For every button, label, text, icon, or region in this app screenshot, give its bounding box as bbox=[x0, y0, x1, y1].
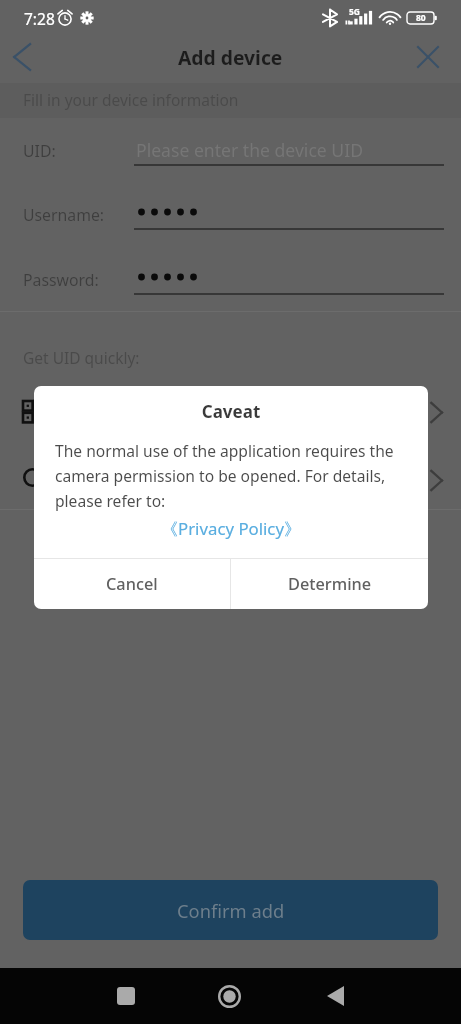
button[interactable]: Cancel bbox=[34, 559, 230, 609]
button[interactable]: Recent apps bbox=[102, 968, 150, 1024]
staticText: Fill in your device information bbox=[23, 89, 239, 110]
staticText: 7:28 bbox=[24, 8, 55, 29]
staticText: Username: bbox=[23, 204, 105, 226]
staticText: Please enter the device UID bbox=[136, 138, 364, 162]
staticText: Get UID quickly: bbox=[23, 347, 140, 368]
staticText: Confirm add bbox=[177, 898, 285, 923]
button[interactable]: Search in LAN bbox=[0, 449, 461, 511]
button[interactable]: Close bbox=[404, 34, 452, 80]
staticText: Determine bbox=[288, 573, 372, 595]
staticText: Cancel bbox=[106, 573, 158, 595]
staticText: Password: bbox=[23, 269, 99, 291]
staticText: The normal use of the application requir… bbox=[55, 440, 407, 511]
staticText: Caveat bbox=[34, 400, 428, 423]
staticText: 80 bbox=[416, 12, 426, 24]
button[interactable]: Determine bbox=[231, 559, 428, 609]
button[interactable]: Confirm add bbox=[23, 880, 438, 940]
staticText: UID: bbox=[23, 140, 56, 162]
button[interactable]: Back bbox=[311, 968, 359, 1024]
staticText: 5G bbox=[349, 6, 361, 18]
button[interactable]: 《Privacy Policy》 bbox=[34, 517, 428, 540]
button[interactable]: Home bbox=[205, 968, 253, 1024]
staticText: Add device bbox=[178, 44, 283, 70]
button[interactable]: Back bbox=[0, 34, 46, 80]
button[interactable]: Scan QR code bbox=[0, 381, 461, 443]
